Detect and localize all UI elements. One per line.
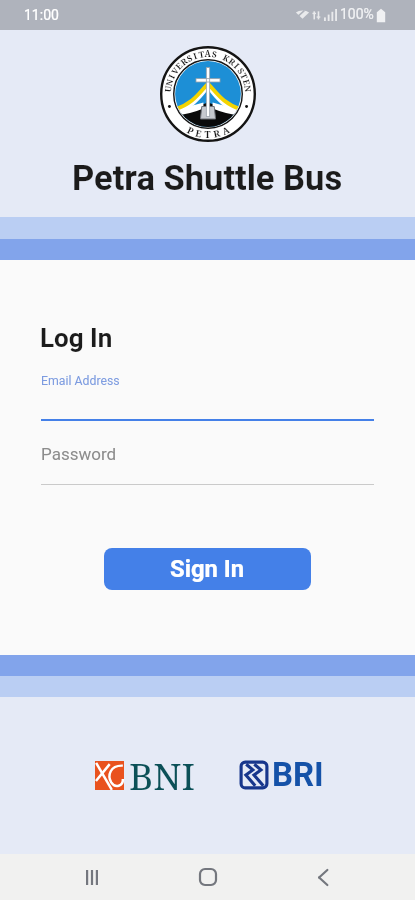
staticText: Email Address: [41, 374, 120, 388]
button[interactable]: Recent apps: [68, 854, 116, 900]
staticText: Petra Shuttle Bus: [72, 158, 343, 198]
staticText: BNI: [129, 750, 196, 800]
staticText: Log In: [40, 323, 113, 353]
button[interactable]: BRI: [239, 755, 324, 794]
button[interactable]: Sign In: [104, 548, 311, 590]
button[interactable]: Email Address: [41, 368, 374, 421]
button[interactable]: Password: [41, 438, 374, 485]
button[interactable]: BNI: [95, 750, 196, 800]
staticText: Password: [41, 444, 117, 464]
staticText: BRI: [272, 755, 324, 794]
button[interactable]: Back: [299, 854, 347, 900]
staticText: 11:00: [24, 7, 59, 23]
staticText: 100%: [340, 6, 374, 22]
button[interactable]: Home: [184, 854, 232, 900]
staticText: Sign In: [170, 555, 245, 583]
